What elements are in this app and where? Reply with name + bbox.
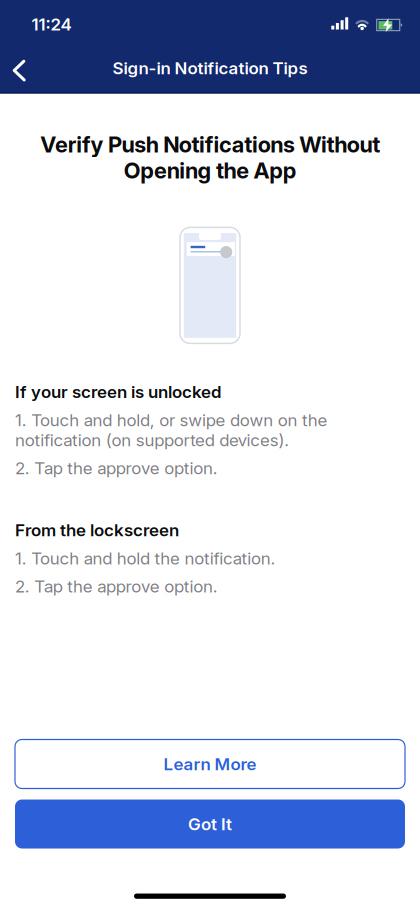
staticText: Sign-in Notification Tips [112,58,307,78]
staticText: Got It [188,814,232,834]
staticText: If your screen is unlocked [15,382,222,402]
button[interactable] [0,49,26,87]
staticText: 2. Tap the approve option. [15,458,218,478]
staticText: 1. Touch and hold the notification. [15,548,275,568]
button[interactable]: Learn More [15,739,405,788]
staticText: Learn More [163,754,256,774]
button[interactable]: Got It [15,799,405,848]
staticText: Verify Push Notifications Without Openin… [40,131,380,183]
staticText: From the lockscreen [15,520,179,540]
staticText: 1. Touch and hold, or swipe down on the … [15,410,327,450]
staticText: 11:24 [31,14,71,34]
staticText: 2. Tap the approve option. [15,576,218,596]
